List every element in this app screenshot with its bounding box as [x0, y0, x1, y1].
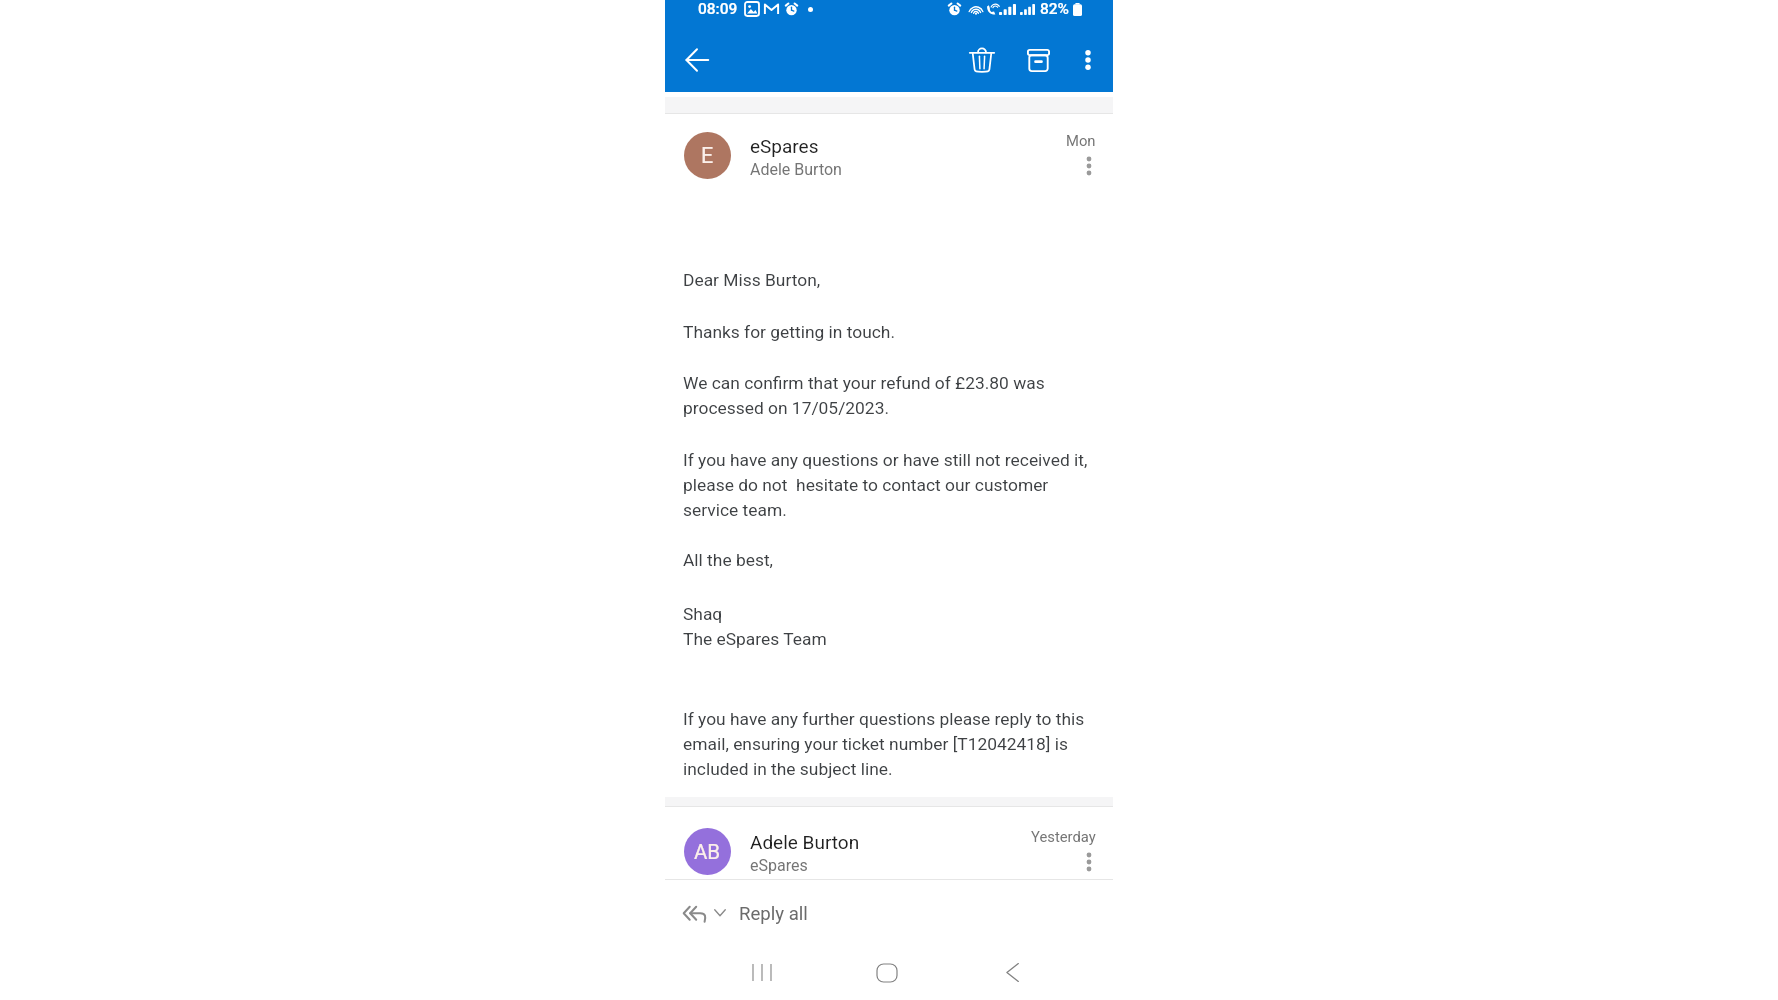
- button[interactable]: Back: [674, 37, 720, 83]
- staticText: Adele Burton: [750, 160, 842, 179]
- button[interactable]: Home: [863, 949, 911, 997]
- staticText: We can confirm that your refund of £23.8…: [683, 373, 1045, 418]
- button[interactable]: Message options: [1078, 155, 1100, 177]
- staticText: If you have any further questions please…: [683, 709, 1085, 779]
- button[interactable]: Recent apps: [738, 948, 786, 996]
- staticText: eSpares: [750, 135, 819, 157]
- button[interactable]: Back: [988, 948, 1036, 996]
- staticText: Mon: [1066, 132, 1096, 149]
- staticText: E: [701, 143, 714, 168]
- button[interactable]: Reply all: [665, 880, 1113, 947]
- staticText: AB: [694, 840, 721, 864]
- staticText: Shaq The eSpares Team: [683, 604, 827, 649]
- staticText: eSpares: [750, 856, 808, 875]
- button[interactable]: AB: [665, 807, 1113, 879]
- staticText: Yesterday: [1031, 828, 1096, 845]
- staticText: 82%: [1040, 0, 1070, 18]
- button[interactable]: More options: [1066, 38, 1110, 82]
- staticText: If you have any questions or have still …: [683, 450, 1088, 520]
- staticText: Adele Burton: [750, 831, 860, 853]
- staticText: Dear Miss Burton,: [683, 270, 821, 290]
- button[interactable]: E: [665, 114, 1113, 193]
- button[interactable]: Delete: [959, 37, 1005, 83]
- button[interactable]: Archive: [1015, 37, 1061, 83]
- button[interactable]: Message options: [1078, 851, 1100, 873]
- staticText: Reply all: [739, 903, 808, 925]
- staticText: 08:09: [698, 0, 738, 18]
- staticText: All the best,: [683, 550, 773, 570]
- staticText: Thanks for getting in touch.: [683, 322, 896, 342]
